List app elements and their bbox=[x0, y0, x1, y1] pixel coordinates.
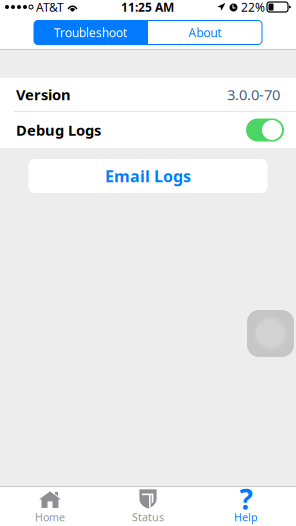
staticText: AT&T bbox=[36, 0, 64, 15]
staticText: Home bbox=[35, 510, 65, 524]
button[interactable]: Status bbox=[99, 487, 197, 526]
button[interactable]: AssistiveTouch bbox=[247, 310, 294, 357]
staticText: ? bbox=[239, 480, 252, 517]
button[interactable]: Home bbox=[1, 487, 99, 526]
staticText: 3.0.0-70 bbox=[227, 85, 280, 104]
staticText: 22% bbox=[241, 0, 265, 15]
staticText: Troubleshoot bbox=[54, 24, 127, 40]
staticText: Email Logs bbox=[105, 165, 191, 187]
button[interactable]: ? bbox=[197, 487, 295, 526]
staticText: Version bbox=[16, 85, 71, 104]
staticText: 11:25 AM bbox=[121, 0, 174, 15]
button[interactable]: About bbox=[148, 20, 262, 44]
staticText: About bbox=[188, 24, 221, 40]
button[interactable]: Debug Logs bbox=[246, 118, 284, 141]
button[interactable]: Troubleshoot bbox=[34, 20, 147, 44]
button[interactable]: Email Logs bbox=[28, 159, 267, 193]
staticText: Help bbox=[234, 510, 258, 524]
staticText: Status bbox=[132, 510, 164, 524]
staticText: Debug Logs bbox=[16, 120, 101, 140]
